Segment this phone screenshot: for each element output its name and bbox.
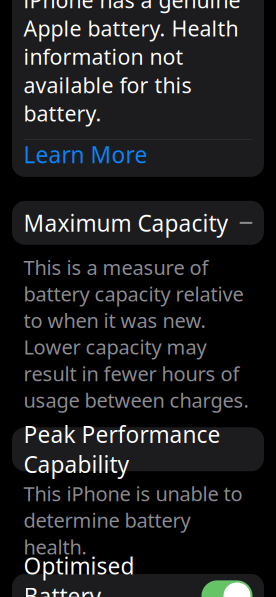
staticText: Unable to verify this iPhone has a genui… xyxy=(23,0,240,127)
staticText: This is a measure of battery capacity re… xyxy=(23,254,248,413)
staticText: This iPhone is unable to determine batte… xyxy=(23,480,242,560)
button[interactable]: Maximum Capacity xyxy=(12,201,264,245)
staticText: Peak Performance Capability xyxy=(23,419,220,479)
button[interactable]: Peak Performance Capability xyxy=(12,427,264,471)
staticText: Maximum Capacity xyxy=(23,208,228,238)
button[interactable]: Learn More xyxy=(23,140,252,169)
staticText: Learn More xyxy=(23,139,147,169)
staticText: Optimised Battery Charging xyxy=(23,551,134,597)
button[interactable]: Optimised Battery Charging xyxy=(12,574,264,597)
